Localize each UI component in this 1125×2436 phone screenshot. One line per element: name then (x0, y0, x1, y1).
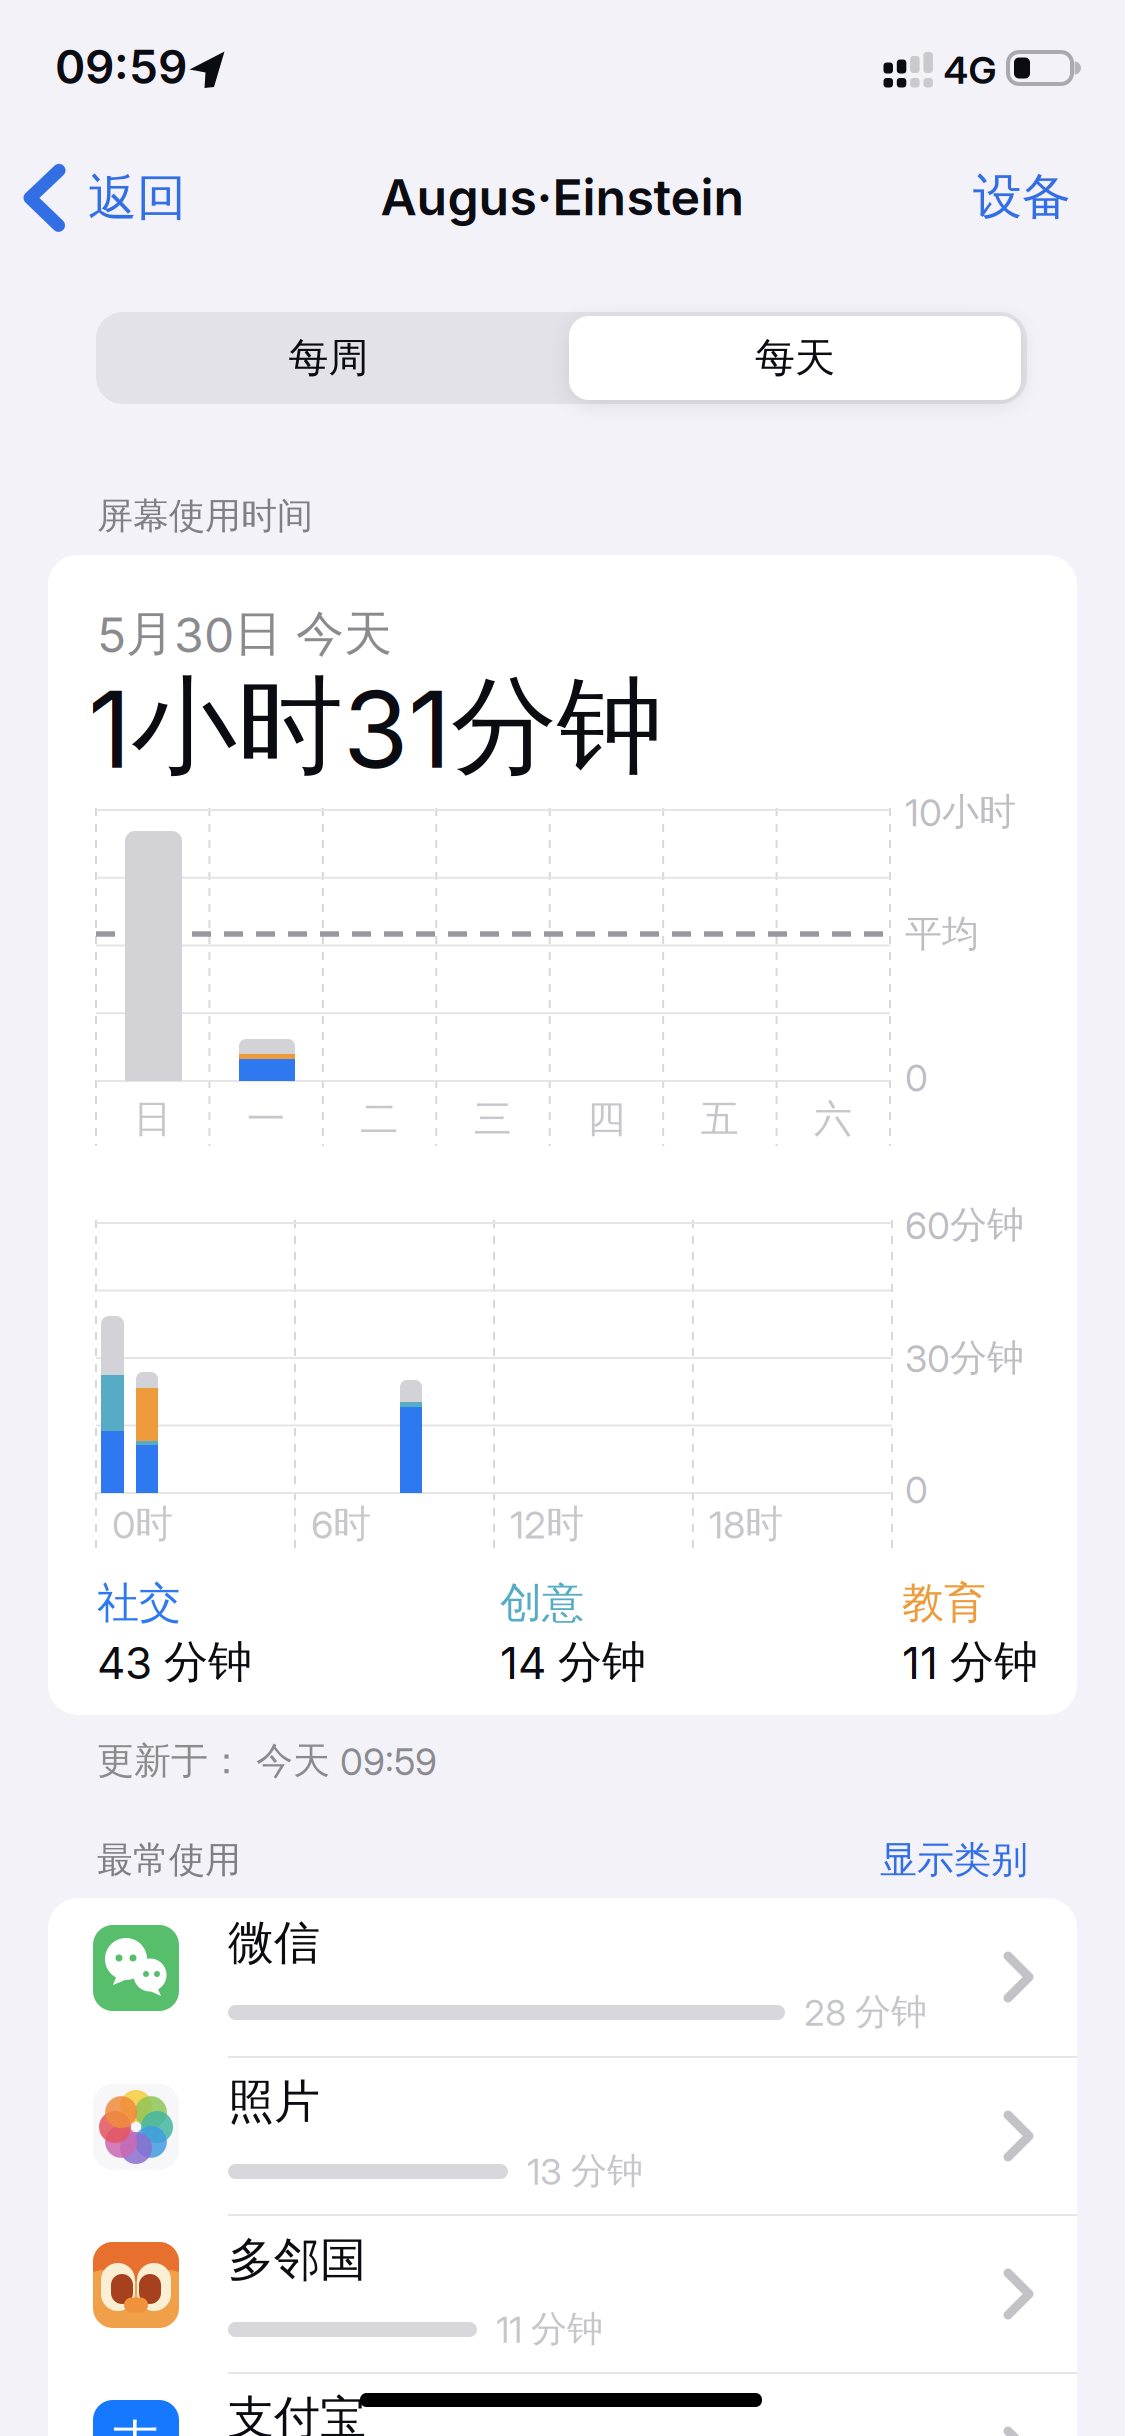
staticText: 二 (360, 1095, 398, 1143)
staticText: 12时 (510, 1500, 584, 1548)
staticText: 09:59 (55, 39, 187, 95)
staticText: 一 (247, 1095, 285, 1143)
staticText: 每天 (755, 333, 835, 383)
button[interactable]: 照片 (48, 2057, 1077, 2215)
staticText: 0时 (112, 1500, 173, 1548)
staticText: 43 分钟 (97, 1634, 252, 1690)
staticText: 显示类别 (880, 1837, 1028, 1883)
staticText: 多邻国 (228, 2231, 366, 2289)
staticText: 4G (943, 47, 996, 93)
staticText: 支 (112, 2413, 160, 2436)
staticText: 返回 (88, 167, 186, 229)
staticText: 11 分钟 (902, 1634, 1038, 1690)
button[interactable]: 每周 (96, 312, 561, 404)
staticText: 11 分钟 (496, 2306, 603, 2352)
staticText: 10小时 (905, 789, 1016, 835)
button[interactable]: 支 (48, 2373, 1077, 2436)
staticText: 支付宝 (228, 2389, 366, 2436)
staticText: Augus·Einstein (380, 167, 744, 227)
staticText: 60分钟 (905, 1202, 1024, 1248)
staticText: 平均 (905, 911, 979, 957)
button[interactable]: 显示类别 (879, 1830, 1029, 1890)
staticText: 照片 (228, 2073, 320, 2131)
staticText: 四 (587, 1095, 625, 1143)
staticText: 更新于： 今天 09:59 (97, 1738, 437, 1784)
staticText: 6时 (311, 1500, 371, 1548)
button[interactable]: 返回 (25, 167, 186, 229)
staticText: 日 (133, 1095, 171, 1143)
staticText: 屏幕使用时间 (97, 493, 313, 539)
staticText: 0 (905, 1056, 928, 1100)
staticText: 1小时31分钟 (88, 660, 663, 794)
staticText: 社交 (97, 1576, 181, 1629)
staticText: 5月30日 今天 (97, 604, 392, 664)
staticText: 微信 (228, 1914, 320, 1972)
staticText: 教育 (902, 1576, 986, 1629)
button[interactable]: 设备 (972, 166, 1072, 228)
staticText: 13 分钟 (527, 2148, 643, 2194)
staticText: 创意 (500, 1576, 584, 1629)
staticText: 18时 (709, 1500, 783, 1548)
staticText: 28 分钟 (804, 1989, 927, 2035)
staticText: 六 (814, 1095, 852, 1143)
button[interactable]: 每天 (569, 316, 1021, 400)
staticText: 五 (701, 1095, 739, 1143)
staticText: 每周 (288, 333, 368, 383)
button[interactable]: 微信 (48, 1898, 1077, 2056)
staticText: 最常使用 (97, 1837, 241, 1883)
staticText: 0 (905, 1468, 928, 1512)
staticText: 三 (474, 1095, 512, 1143)
button[interactable]: 多邻国 (48, 2215, 1077, 2373)
staticText: 设备 (973, 166, 1071, 228)
staticText: 30分钟 (905, 1335, 1024, 1381)
staticText: 14 分钟 (500, 1634, 646, 1690)
